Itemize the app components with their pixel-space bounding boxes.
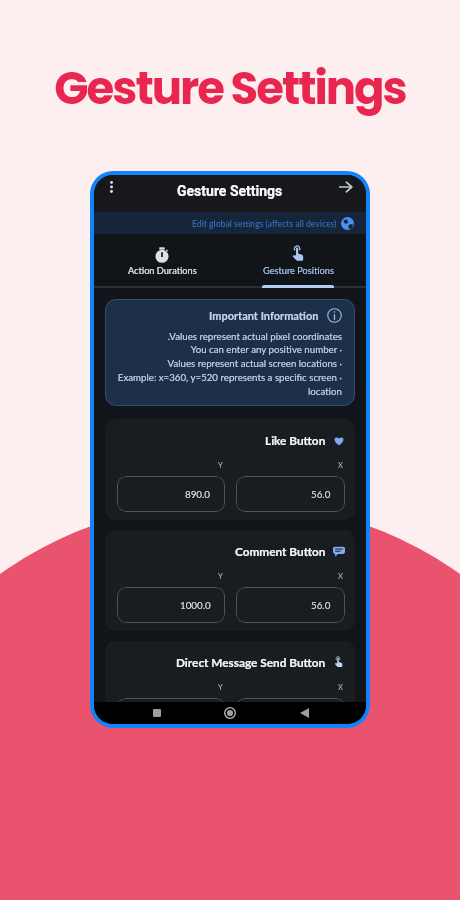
button[interactable]: Back (293, 702, 315, 724)
staticText: Like Button (265, 433, 326, 447)
button[interactable]: More options (100, 176, 122, 198)
button[interactable]: Comment Button (105, 530, 355, 631)
button[interactable]: Gesture Positions (230, 234, 366, 288)
button[interactable]: Recents (146, 702, 168, 724)
staticText: .Values represent actual pixel coordinat… (116, 330, 342, 397)
staticText: Direct Message Send Button (176, 655, 326, 669)
staticText: 890.0 (185, 488, 211, 500)
staticText: Gesture Settings (177, 183, 283, 199)
staticText: 1000.0 (180, 599, 211, 611)
staticText: X (338, 460, 343, 469)
button[interactable]: Save and continue (334, 176, 356, 198)
staticText: X (338, 571, 343, 580)
button[interactable] (236, 698, 345, 716)
button[interactable]: Edit global settings (affects all device… (94, 212, 366, 234)
staticText: 56.0 (311, 488, 331, 500)
staticText: Y (218, 682, 223, 691)
staticText: 56.0 (311, 599, 331, 611)
button[interactable]: Action Durations (94, 234, 230, 288)
button[interactable]: Direct Message Send Button (105, 641, 355, 724)
staticText: Important Information (209, 309, 319, 322)
staticText: Comment Button (235, 544, 326, 558)
staticText: Y (218, 571, 223, 580)
button[interactable]: 56.0 (236, 587, 345, 623)
button[interactable]: Home (219, 702, 241, 724)
button[interactable]: 56.0 (236, 476, 345, 512)
staticText: X (338, 682, 343, 691)
staticText: Action Durations (128, 265, 197, 276)
button[interactable]: Important Information (105, 299, 355, 406)
button[interactable] (117, 698, 225, 716)
staticText: Edit global settings (affects all device… (192, 219, 337, 229)
button[interactable]: Like Button (105, 419, 355, 520)
staticText: Y (218, 460, 223, 469)
staticText: Gesture Settings (0, 57, 460, 120)
button[interactable]: 890.0 (117, 476, 225, 512)
button[interactable]: 1000.0 (117, 587, 225, 623)
staticText: Gesture Positions (263, 265, 334, 276)
